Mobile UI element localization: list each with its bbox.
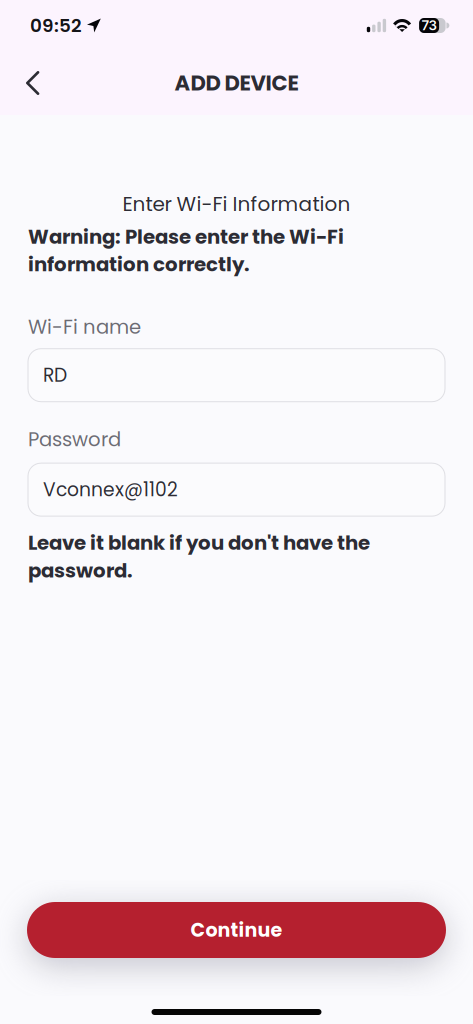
staticText: Vconnex@1102 [43,477,178,503]
staticText: RD [43,362,67,388]
staticText: 73 [422,17,437,33]
staticText: Wi-Fi name [28,313,141,341]
staticText: Enter Wi-Fi Information [122,190,350,218]
staticText: Leave it blank if you don't have the pas… [28,529,370,584]
staticText: Continue [190,917,282,943]
button[interactable]: Continue [0,902,473,958]
button[interactable]: Back [0,59,57,107]
staticText: 09:52 [30,13,82,38]
staticText: ADD DEVICE [174,68,298,98]
staticText: Password [28,426,121,453]
staticText: Warning: Please enter the Wi-Fi informat… [28,223,344,278]
